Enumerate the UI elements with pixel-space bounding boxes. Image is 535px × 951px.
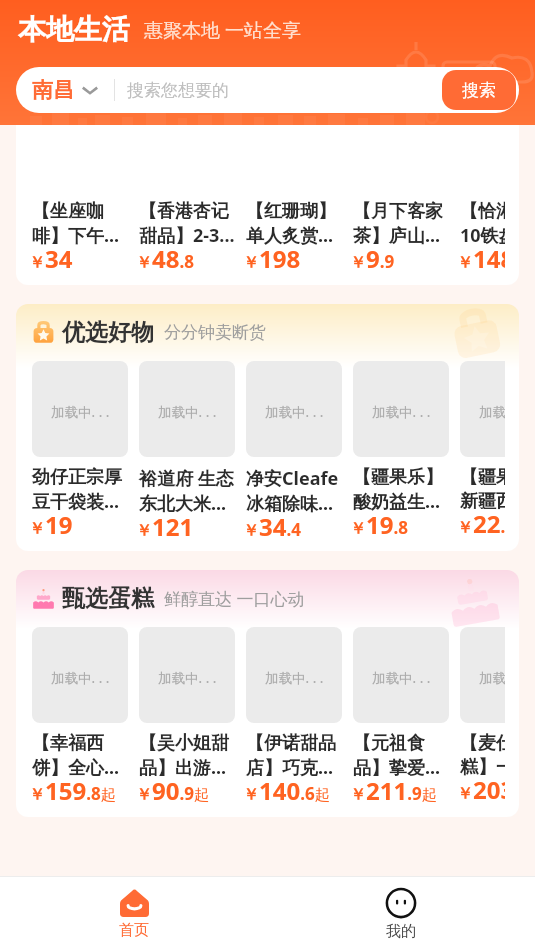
button[interactable]: 加载中. . .	[353, 361, 449, 546]
button[interactable]: 【红珊瑚】单人炙赏...	[246, 200, 342, 280]
staticText: ￥34.4	[243, 510, 301, 543]
staticText: 加载中. . .	[265, 669, 324, 687]
staticText: 首页	[119, 921, 149, 940]
button[interactable]: 加载中. . .	[246, 361, 342, 548]
button[interactable]: 【坐座咖啡】下午...	[32, 200, 128, 280]
staticText: ￥22.9	[457, 507, 505, 540]
other: Home	[120, 888, 149, 917]
staticText: 劲仔正宗厚豆干袋装...	[32, 466, 128, 513]
button[interactable]: 【恰湘汇】10铁盘装特惠	[460, 200, 505, 280]
staticText: 加载中. . .	[479, 669, 505, 687]
staticText: 优选好物	[62, 318, 154, 347]
button[interactable]: 加载中. . .	[139, 627, 235, 812]
staticText: ￥140.6起	[243, 774, 330, 807]
button[interactable]: 加载中. . .	[246, 627, 342, 812]
button[interactable]: 南昌	[16, 67, 114, 113]
staticText: 搜索您想要的	[127, 80, 442, 101]
staticText: 【元祖食品】挚爱...	[353, 732, 449, 779]
staticText: ￥159.8起	[29, 774, 116, 807]
button[interactable]: 加载中. . .	[460, 627, 505, 811]
staticText: ￥19	[29, 508, 73, 541]
staticText: ￥48.8	[136, 242, 194, 275]
staticText: 搜索	[462, 80, 496, 101]
button[interactable]: Home	[0, 877, 267, 951]
staticText: 【麦仕蛋糕】一口心动	[460, 732, 505, 778]
staticText: 南昌	[32, 77, 74, 103]
staticText: 【幸福西饼】全心...	[32, 732, 128, 779]
staticText: ￥34	[29, 242, 73, 275]
staticText: 加载中. . .	[372, 669, 431, 687]
button[interactable]: 加载中. . .	[460, 361, 505, 545]
other: Profile	[386, 888, 416, 918]
staticText: ￥90.9起	[136, 774, 209, 807]
staticText: 【红珊瑚】单人炙赏...	[246, 200, 342, 247]
staticText: 甄选蛋糕	[62, 584, 154, 613]
staticText: 我的	[386, 922, 416, 941]
staticText: 【吴小姐甜品】出游...	[139, 732, 235, 779]
staticText: 加载中. . .	[51, 669, 110, 687]
staticText: 分分钟卖断货	[164, 322, 266, 343]
staticText: 【坐座咖啡】下午...	[32, 200, 128, 247]
staticText: ￥121	[136, 510, 194, 543]
staticText: ￥203起	[457, 773, 505, 806]
staticText: 【恰湘汇】10铁盘装特惠	[460, 200, 505, 247]
button[interactable]: 加载中. . .	[32, 361, 128, 546]
button[interactable]: Profile	[267, 877, 535, 951]
button[interactable]: 加载中. . .	[353, 627, 449, 812]
staticText: 本地生活	[18, 12, 130, 47]
button[interactable]: 【香港杏记甜品】2-3...	[139, 200, 235, 280]
staticText: 【月下客家茶】庐山...	[353, 200, 449, 247]
staticText: 【伊诺甜品店】巧克...	[246, 732, 342, 779]
staticText: 加载中. . .	[51, 403, 110, 421]
staticText: 【香港杏记甜品】2-3...	[139, 200, 235, 247]
staticText: 裕道府 生态东北大米...	[139, 466, 235, 515]
staticText: 加载中. . .	[158, 669, 217, 687]
staticText: ￥198	[243, 242, 301, 275]
staticText: 加载中. . .	[479, 403, 505, 421]
staticText: 净安Cleafe冰箱除味...	[246, 466, 342, 515]
staticText: 鲜醇直达 一口心动	[164, 587, 305, 610]
staticText: ￥9.9	[350, 242, 395, 275]
button[interactable]: 加载中. . .	[139, 361, 235, 548]
staticText: ￥19.8	[350, 508, 408, 541]
staticText: 惠聚本地 一站全享	[144, 17, 301, 43]
staticText: 【疆果乐】酸奶益生...	[353, 466, 449, 513]
staticText: ￥148	[457, 242, 505, 275]
button[interactable]: 【月下客家茶】庐山...	[353, 200, 449, 280]
staticText: ￥211.9起	[350, 774, 437, 807]
staticText: 加载中. . .	[158, 403, 217, 421]
staticText: 【疆果乐】新疆西域红枣	[460, 466, 505, 512]
staticText: 加载中. . .	[265, 403, 324, 421]
staticText: 加载中. . .	[372, 403, 431, 421]
button[interactable]: 搜索	[442, 70, 516, 110]
button[interactable]: 加载中. . .	[32, 627, 128, 812]
